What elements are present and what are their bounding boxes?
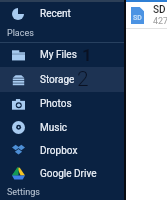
button[interactable]: Storage	[0, 67, 124, 92]
button[interactable]: SD	[0, 2, 167, 28]
staticText: Recent	[40, 8, 71, 20]
button[interactable]: Google Drive	[0, 162, 124, 185]
staticText: My Files	[40, 49, 77, 61]
staticText: Photos	[40, 98, 72, 110]
staticText: 427.	[153, 16, 167, 27]
staticText: Music	[40, 122, 68, 134]
button[interactable]: Photos	[0, 92, 124, 116]
staticText: 2	[77, 67, 89, 92]
staticText: Dropbox	[40, 145, 78, 157]
staticText: Places	[7, 28, 34, 39]
staticText: 1	[82, 45, 92, 65]
button[interactable]: My Files	[0, 43, 124, 67]
staticText: Google Drive	[40, 168, 97, 180]
staticText: Storage	[40, 74, 75, 86]
button[interactable]: Recent	[0, 2, 124, 25]
button[interactable]: Music	[0, 116, 124, 139]
staticText: Settings	[7, 187, 40, 198]
staticText: SD	[153, 4, 166, 16]
button[interactable]: Dropbox	[0, 139, 124, 162]
staticText: SD	[133, 14, 142, 22]
